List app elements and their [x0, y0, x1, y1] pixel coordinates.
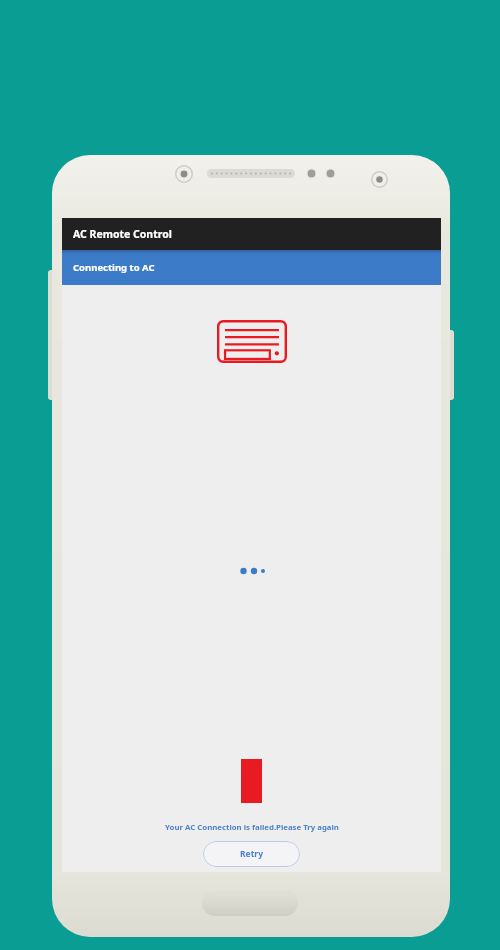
staticText: Retry	[240, 848, 263, 860]
staticText: Your AC Connection is failed.Please Try …	[165, 822, 339, 833]
button[interactable]: Air conditioner	[217, 320, 287, 363]
staticText: AC Remote Control	[73, 227, 172, 241]
staticText: Connecting to AC	[73, 261, 155, 274]
button[interactable]: Retry	[203, 841, 300, 867]
button[interactable]: Home	[202, 890, 298, 916]
